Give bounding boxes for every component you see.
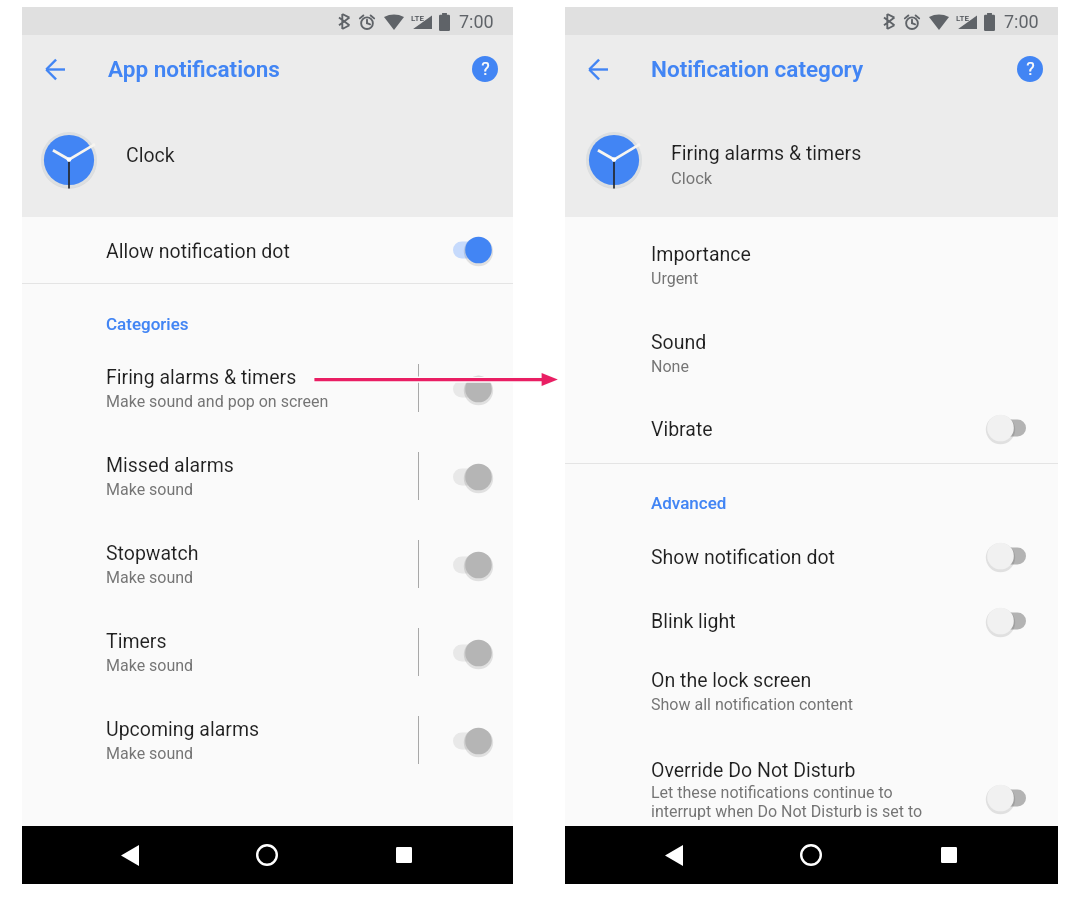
staticText: Show all notification content <box>651 695 854 714</box>
button[interactable]: Back <box>22 826 238 884</box>
staticText: Firing alarms & timers <box>671 142 862 165</box>
staticText: Sound <box>651 331 707 354</box>
staticText: App notifications <box>108 56 280 82</box>
staticText: Make sound <box>106 568 194 587</box>
staticText: Blink light <box>651 610 736 633</box>
button[interactable]: Missed alarms <box>22 428 513 516</box>
button[interactable]: Back <box>565 826 782 884</box>
staticText: Notification category <box>651 56 864 82</box>
staticText: Firing alarms & timers <box>106 366 297 389</box>
button[interactable]: On the lock screen <box>565 653 1058 749</box>
button[interactable]: Back <box>575 46 621 92</box>
staticText: Show notification dot <box>651 546 835 569</box>
staticText: Make sound and pop on screen <box>106 392 329 411</box>
staticText: 7:00 <box>1004 11 1039 32</box>
button[interactable]: Back <box>32 46 78 92</box>
staticText: Make sound <box>106 744 194 763</box>
button[interactable]: Upcoming alarms <box>22 692 513 780</box>
staticText: LTE <box>956 14 969 23</box>
staticText: LTE <box>411 14 424 23</box>
staticText: On the lock screen <box>651 669 812 692</box>
staticText: ? <box>1026 58 1035 79</box>
staticText: Clock <box>671 169 713 188</box>
staticText: Let these notifications continue to inte… <box>651 783 923 821</box>
staticText: Make sound <box>106 656 194 675</box>
staticText: 7:00 <box>459 11 494 32</box>
button[interactable]: Blink light <box>565 588 1058 653</box>
staticText: Override Do Not Disturb <box>651 759 856 782</box>
staticText: Advanced <box>651 493 727 513</box>
button[interactable]: Home <box>238 826 295 884</box>
button[interactable]: Show notification dot <box>565 524 1058 588</box>
staticText: Timers <box>106 630 167 653</box>
staticText: Upcoming alarms <box>106 718 260 741</box>
staticText: Make sound <box>106 480 194 499</box>
button[interactable]: Vibrate <box>565 393 1058 463</box>
button[interactable]: Sound <box>565 305 1058 393</box>
staticText: Clock <box>126 144 175 167</box>
staticText: ? <box>481 58 490 79</box>
button[interactable]: Home <box>782 826 839 884</box>
staticText: Urgent <box>651 269 699 288</box>
button[interactable]: Allow notification dot <box>22 217 513 283</box>
staticText: Allow notification dot <box>106 240 290 263</box>
button[interactable]: Recents <box>295 826 513 884</box>
button[interactable]: Help <box>1010 49 1050 89</box>
button[interactable]: Override Do Not Disturb <box>565 749 1058 826</box>
button[interactable]: Recents <box>839 826 1058 884</box>
button[interactable]: Help <box>465 49 505 89</box>
button[interactable]: Firing alarms & timers <box>22 340 513 428</box>
staticText: Missed alarms <box>106 454 234 477</box>
staticText: None <box>651 357 689 376</box>
staticText: Categories <box>106 314 189 334</box>
button[interactable]: Timers <box>22 604 513 692</box>
staticText: Stopwatch <box>106 542 199 565</box>
button[interactable]: Stopwatch <box>22 516 513 604</box>
button[interactable]: Importance <box>565 217 1058 305</box>
staticText: Importance <box>651 243 751 266</box>
staticText: Vibrate <box>651 418 713 441</box>
